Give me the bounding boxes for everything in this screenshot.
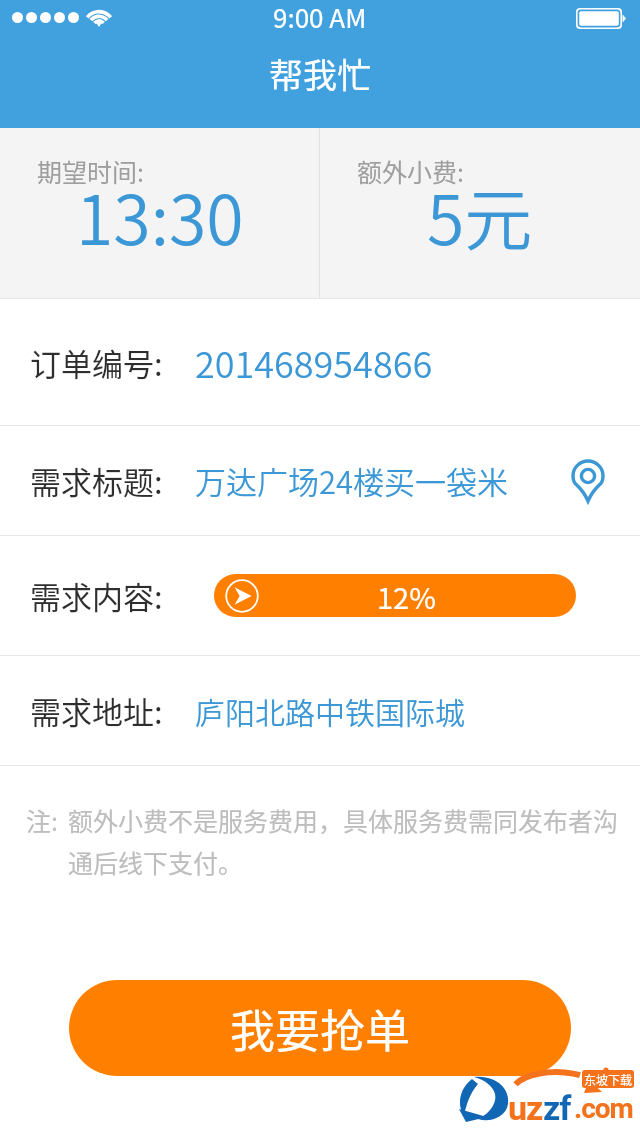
button[interactable]: 12% <box>214 574 576 617</box>
staticText: 订单编号: <box>30 340 163 385</box>
staticText: 需求标题: <box>30 458 163 503</box>
staticText: 5元 <box>427 166 533 264</box>
staticText: 需求地址: <box>30 688 163 733</box>
button[interactable]: 期望时间: <box>0 128 319 298</box>
staticText: 9:00 AM <box>273 0 367 36</box>
button[interactable]: 查看位置 <box>536 426 640 535</box>
staticText: 我要抢单 <box>230 996 411 1061</box>
button[interactable]: 需求地址: <box>0 656 640 765</box>
staticText: .com <box>574 1092 633 1125</box>
staticText: 额外小费不是服务费用，具体服务费需同发布者沟通后线下支付。 <box>68 802 620 880</box>
staticText: 额外小费: <box>357 153 464 189</box>
staticText: 东坡下载 <box>584 1071 633 1088</box>
staticText: 需求内容: <box>30 573 163 618</box>
button[interactable]: 我要抢单 <box>69 980 571 1076</box>
button[interactable]: 需求标题: <box>0 426 640 535</box>
staticText: 12% <box>377 575 436 617</box>
staticText: 13:30 <box>76 166 244 264</box>
staticText: uz <box>508 1088 543 1128</box>
staticText: 万达广场24楼买一袋米 <box>195 458 509 503</box>
staticText: 201468954866 <box>195 336 433 388</box>
staticText: 帮我忙 <box>269 49 371 98</box>
button[interactable]: 订单编号: <box>0 299 640 425</box>
button[interactable]: 额外小费: <box>320 128 640 298</box>
staticText: 注: <box>26 802 58 838</box>
staticText: 期望时间: <box>37 153 144 189</box>
button[interactable]: 需求内容: <box>0 536 640 655</box>
staticText: 庐阳北路中铁国际城 <box>195 689 465 732</box>
staticText: zf <box>543 1088 571 1128</box>
